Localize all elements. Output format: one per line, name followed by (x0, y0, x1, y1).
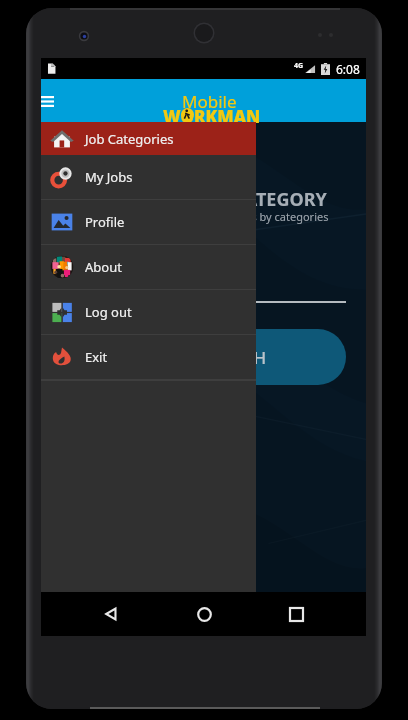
staticText: My Jobs (85, 168, 133, 186)
staticText: Mobile (182, 90, 237, 113)
button[interactable]: Log out (41, 290, 256, 334)
button[interactable]: My Jobs (41, 155, 256, 199)
button[interactable]: Recent apps (273, 592, 319, 636)
staticText: 4G (294, 61, 304, 71)
button[interactable]: SEARCH (122, 329, 346, 385)
button[interactable]: Exit (41, 335, 256, 379)
button[interactable]: Open navigation drawer (41, 79, 75, 122)
button[interactable]: Back (88, 592, 134, 636)
staticText: 6:08 (336, 61, 360, 77)
button[interactable]: Job Categories (41, 122, 256, 155)
staticText: SEARCH BY CATEGORY (131, 187, 327, 212)
staticText: Job Categories (85, 130, 174, 148)
staticText: Log out (85, 303, 132, 321)
staticText: WORKMAN (163, 105, 261, 128)
staticText: Exit (85, 348, 108, 366)
button[interactable]: About (41, 245, 256, 289)
button[interactable]: Home (181, 592, 227, 636)
staticText: Search your jobs by categories (171, 209, 329, 224)
staticText: SEARCH (202, 346, 267, 369)
button[interactable]: Profile (41, 200, 256, 244)
staticText: Profile (85, 213, 125, 231)
staticText: About (85, 258, 122, 276)
